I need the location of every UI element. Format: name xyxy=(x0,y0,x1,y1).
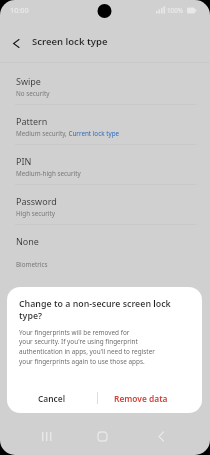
button[interactable]: Password xyxy=(0,185,210,224)
staticText: PIN xyxy=(16,155,32,167)
staticText: 100% xyxy=(167,6,184,15)
staticText: Medium-high security xyxy=(16,169,81,178)
button[interactable]: Cancel xyxy=(7,383,97,413)
button[interactable]: Pattern xyxy=(0,105,210,144)
staticText: Swipe xyxy=(16,75,41,87)
staticText: Medium security, Current lock type xyxy=(16,129,120,138)
button[interactable]: Swipe xyxy=(0,63,210,104)
staticText: Screen lock type xyxy=(32,35,108,48)
staticText: Remove data xyxy=(114,393,168,404)
button[interactable] xyxy=(0,29,24,53)
staticText: Password xyxy=(16,195,57,207)
staticText: Cancel xyxy=(38,393,66,404)
staticText: Your fingerprints will be removed for yo… xyxy=(19,328,155,366)
button[interactable]: None xyxy=(0,225,210,255)
staticText: Pattern xyxy=(16,115,48,127)
button[interactable]: Remove data xyxy=(98,383,184,413)
staticText: 10:00 xyxy=(10,5,29,15)
staticText: Change to a non-secure screen lock type? xyxy=(19,298,171,322)
staticText: None xyxy=(16,235,39,247)
staticText: No security xyxy=(16,89,50,98)
staticText: High security xyxy=(16,209,55,218)
staticText: Biometrics xyxy=(16,260,48,269)
button[interactable]: PIN xyxy=(0,145,210,184)
